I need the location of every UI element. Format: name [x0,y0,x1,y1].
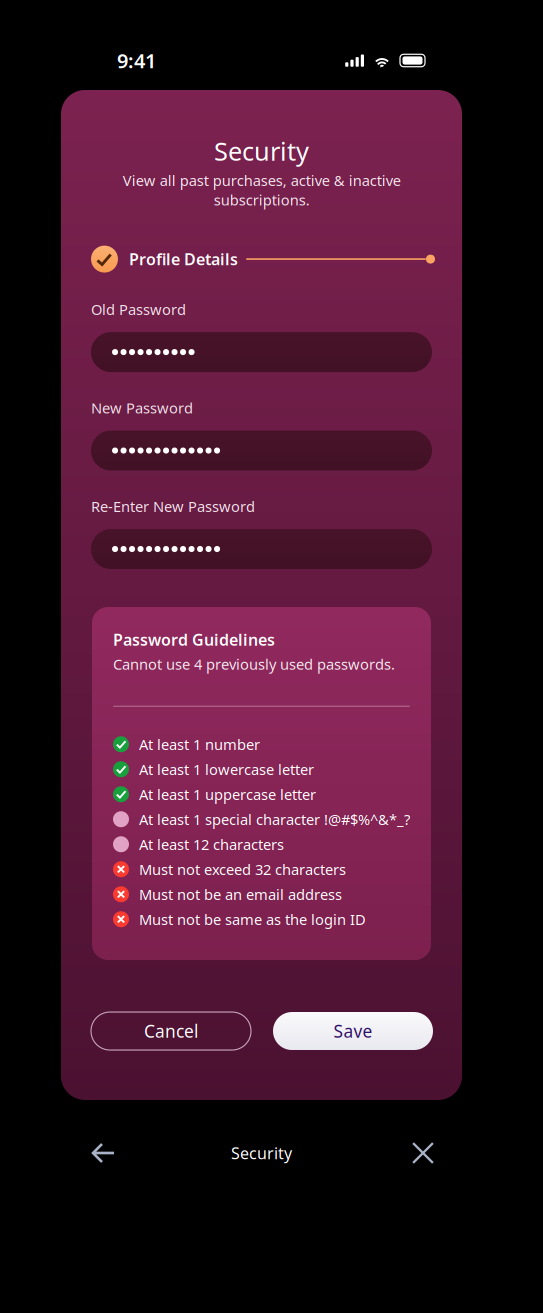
staticText: Must not be same as the login ID [139,909,366,929]
staticText: At least 12 characters [139,834,284,854]
staticText: At least 1 lowercase letter [139,759,314,779]
staticText: At least 1 special character !@#$%^&*_? [139,809,410,829]
staticText: Cancel [144,1019,198,1042]
staticText: New Password [91,398,193,418]
staticText: Cannot use 4 previously used passwords. [113,654,395,674]
staticText: 9:41 [117,47,156,74]
staticText: View all past purchases, active & inacti… [122,171,400,210]
staticText: Old Password [91,300,186,319]
staticText: Must not exceed 32 characters [139,859,346,879]
staticText: Must not be an email address [139,884,342,904]
staticText: At least 1 uppercase letter [139,784,316,804]
staticText: Security [231,1142,292,1164]
staticText: Password Guidelines [113,629,275,650]
staticText: Save [333,1019,372,1042]
staticText: At least 1 number [139,734,260,754]
staticText: Security [214,134,309,168]
button[interactable]: Back [77,1128,129,1178]
staticText: Profile Details [129,248,238,270]
button[interactable]: Save [273,1012,433,1050]
button[interactable]: Cancel [91,1012,251,1050]
staticText: Re-Enter New Password [91,497,255,516]
button[interactable]: Close [400,1130,446,1176]
